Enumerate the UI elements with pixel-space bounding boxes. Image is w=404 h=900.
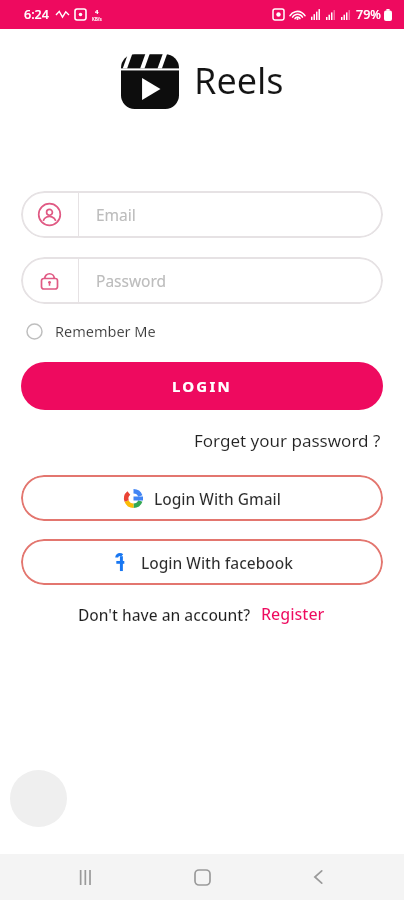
staticText: Don't have an account? <box>78 604 251 625</box>
button[interactable]: Login With Gmail <box>21 475 383 521</box>
staticText: 6:24 <box>24 6 49 23</box>
staticText: Login With Gmail <box>154 488 281 509</box>
staticText: Remember Me <box>55 321 156 341</box>
staticText: KB/s <box>92 16 102 22</box>
button[interactable]: Login With facebook <box>21 539 383 585</box>
staticText: LOGIN <box>172 376 232 396</box>
button[interactable]: Email <box>21 191 383 238</box>
button[interactable]: Recent apps <box>56 854 116 900</box>
button[interactable]: Remember Me <box>24 317 158 345</box>
button[interactable]: Register <box>259 601 327 627</box>
staticText: Register <box>261 603 325 625</box>
staticText: 4 <box>95 8 99 16</box>
button[interactable]: LOGIN <box>21 362 383 410</box>
staticText: Login With facebook <box>141 552 293 573</box>
button[interactable]: Back <box>288 854 348 900</box>
button[interactable]: Forget your password ? <box>192 426 383 455</box>
staticText: Email <box>96 204 136 225</box>
staticText: Forget your password ? <box>194 429 381 452</box>
staticText: Password <box>96 270 167 291</box>
button[interactable]: Password <box>21 257 383 304</box>
button[interactable]: Home <box>172 854 232 900</box>
staticText: 79% <box>356 6 381 23</box>
staticText: Reels <box>194 56 284 105</box>
